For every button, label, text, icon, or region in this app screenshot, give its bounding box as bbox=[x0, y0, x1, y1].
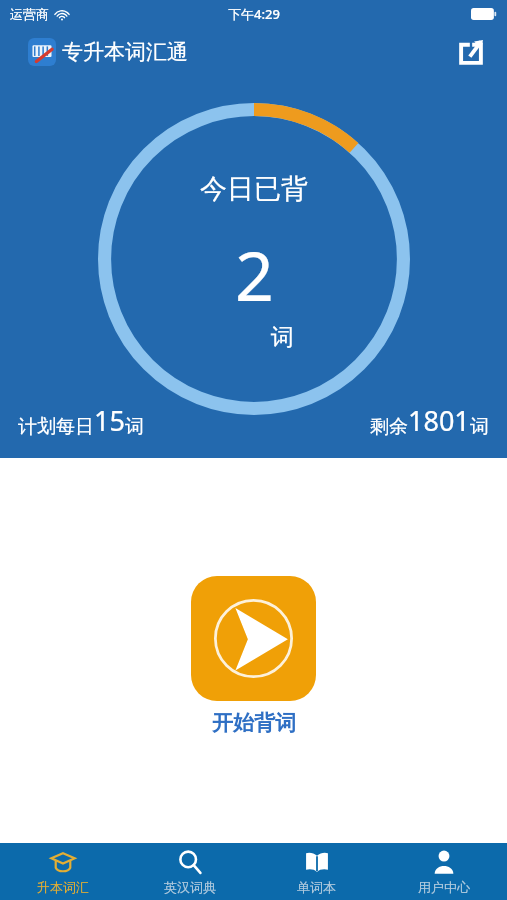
staticText: 今日已背 bbox=[200, 172, 308, 206]
staticText: 用户中心 bbox=[418, 879, 470, 895]
staticText: 开始背词 bbox=[212, 710, 296, 736]
button[interactable]: 专升本词汇通 bbox=[28, 38, 188, 66]
button[interactable]: Share bbox=[451, 32, 491, 72]
staticText: 词 bbox=[271, 323, 294, 352]
staticText: 词 bbox=[125, 415, 144, 439]
staticText: 单词本 bbox=[297, 879, 336, 895]
staticText: 1801 bbox=[408, 402, 470, 439]
staticText: 升本词汇 bbox=[37, 879, 89, 895]
button[interactable]: 开始背词 bbox=[191, 576, 316, 736]
button[interactable]: 升本词汇 bbox=[0, 843, 126, 900]
staticText: 计划每日 bbox=[18, 415, 94, 439]
button[interactable]: 单词本 bbox=[253, 843, 380, 900]
staticText: 词 bbox=[470, 415, 489, 439]
staticText: 下午4:29 bbox=[228, 5, 280, 23]
button[interactable]: 英汉词典 bbox=[126, 843, 253, 900]
button[interactable]: 用户中心 bbox=[380, 843, 507, 900]
staticText: 运营商 bbox=[10, 6, 49, 22]
staticText: 英汉词典 bbox=[164, 879, 216, 895]
staticText: 15 bbox=[94, 402, 125, 439]
staticText: 专升本词汇通 bbox=[62, 39, 188, 65]
staticText: 剩余 bbox=[370, 415, 408, 439]
staticText: 2 bbox=[235, 228, 274, 321]
